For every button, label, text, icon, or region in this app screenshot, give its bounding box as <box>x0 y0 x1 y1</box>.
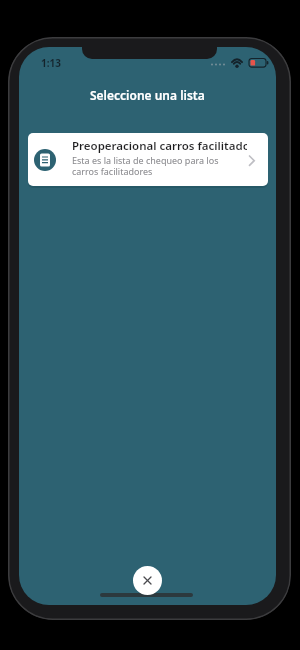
staticText: 1:13 <box>41 56 61 68</box>
staticText: Preoperacional carros facilitador <box>72 138 247 154</box>
button[interactable] <box>133 566 162 595</box>
staticText: Seleccione una lista <box>90 87 205 103</box>
button[interactable]: Preoperacional carros facilitador <box>28 133 268 186</box>
staticText: Esta es la lista de chequeo para los car… <box>72 154 219 178</box>
